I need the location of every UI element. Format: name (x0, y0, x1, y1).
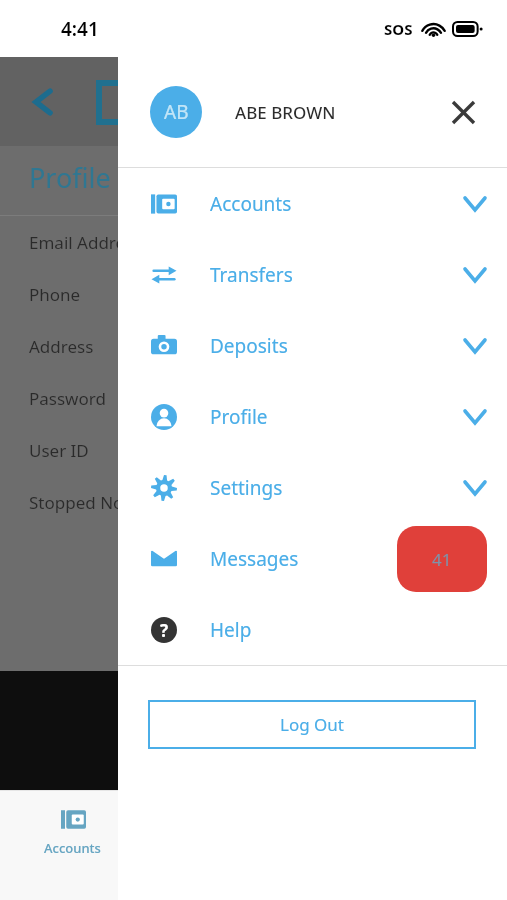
staticText: Accounts (44, 839, 101, 857)
staticText: Member FDIC (208, 721, 299, 740)
button[interactable]: User ID (0, 424, 507, 476)
button[interactable]: Password (0, 372, 507, 424)
staticText: Transfers (210, 262, 293, 288)
button[interactable]: Stopped Notices (0, 476, 507, 528)
staticText: Help (210, 617, 252, 643)
button[interactable]: Settings (118, 452, 507, 523)
button[interactable]: Accounts (118, 168, 507, 239)
other: Back (27, 86, 59, 118)
staticText: Phone (29, 283, 81, 306)
staticText: Address (29, 335, 94, 358)
button[interactable]: Address (0, 320, 507, 372)
staticText: Messages (210, 546, 299, 572)
staticText: Stopped Notices (29, 491, 160, 514)
staticText: SOS (384, 19, 413, 39)
staticText: AB (164, 99, 189, 125)
staticText: Profile (29, 159, 111, 196)
button[interactable]: ? (118, 594, 507, 665)
staticText: ? (160, 619, 169, 642)
button[interactable]: Messages (118, 523, 507, 594)
staticText: Settings (210, 475, 283, 501)
staticText: 41 (432, 548, 452, 571)
staticText: User ID (29, 439, 89, 462)
button[interactable]: Accounts (25, 806, 120, 857)
staticText: Profile (210, 404, 268, 430)
staticText: 4:41 (61, 16, 99, 42)
button[interactable]: Close menu (441, 90, 485, 134)
button[interactable]: Transfers (118, 239, 507, 310)
button[interactable]: Log Out (148, 700, 476, 749)
button[interactable]: Phone (0, 268, 507, 320)
staticText: Email Address (29, 231, 142, 254)
button[interactable]: Profile (118, 381, 507, 452)
staticText: Deposits (210, 333, 288, 359)
button[interactable]: Deposits (118, 310, 507, 381)
staticText: Password (29, 387, 106, 410)
staticText: Accounts (210, 191, 292, 217)
staticText: Log Out (280, 713, 344, 736)
button[interactable]: Email Address (0, 216, 507, 268)
staticText: ABE BROWN (235, 101, 336, 124)
